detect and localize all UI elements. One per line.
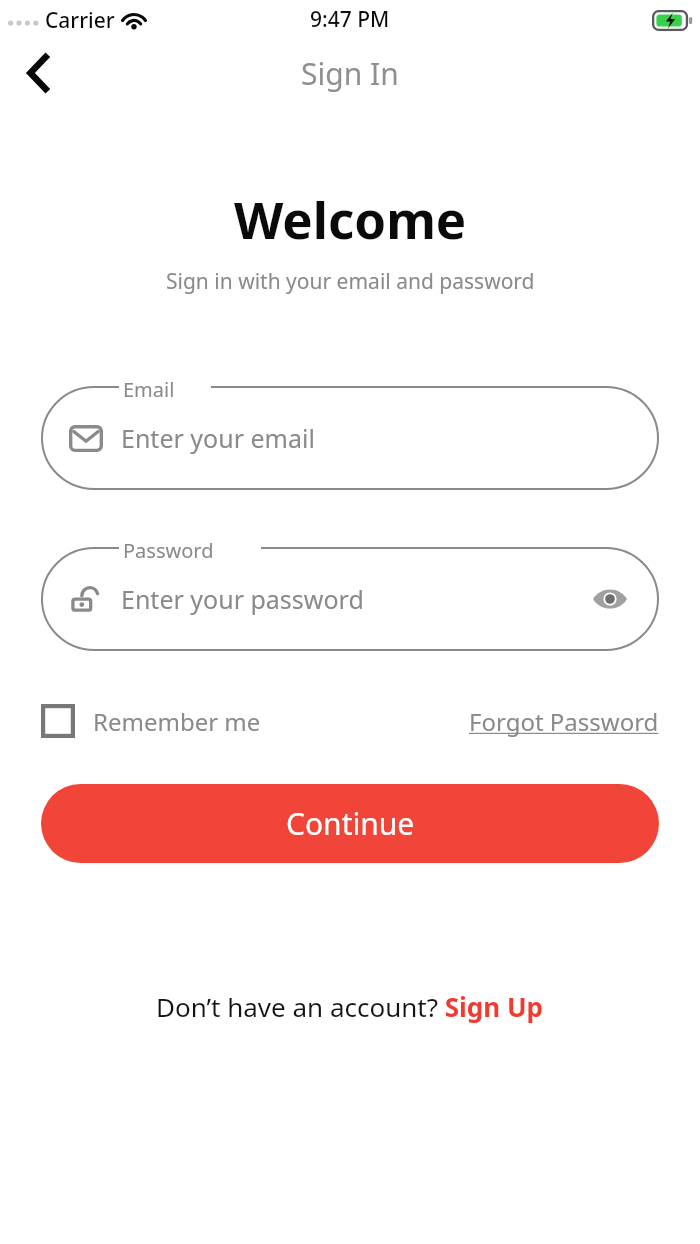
staticText: 9:47 PM: [310, 5, 390, 34]
button[interactable]: Remember me: [41, 704, 261, 738]
staticText: Sign in with your email and password: [166, 267, 535, 296]
button[interactable]: Password: [41, 537, 659, 651]
staticText: Password: [123, 537, 214, 564]
staticText: Enter your password: [121, 582, 364, 616]
staticText: Don’t have an account? Sign Up: [156, 989, 544, 1024]
staticText: Remember me: [93, 705, 261, 738]
staticText: Email: [123, 376, 175, 403]
button[interactable]: Show password: [587, 576, 633, 622]
staticText: Enter your email: [121, 421, 315, 455]
button[interactable]: Email: [41, 376, 659, 490]
button[interactable]: Continue: [41, 784, 659, 863]
staticText: Welcome: [234, 184, 467, 253]
staticText: Forgot Password: [469, 705, 659, 738]
button[interactable]: Don’t have an account? Sign Up: [156, 989, 544, 1024]
button[interactable]: Forgot Password: [469, 705, 659, 738]
staticText: Continue: [286, 803, 415, 844]
button[interactable]: Back: [12, 47, 64, 99]
staticText: Sign In: [301, 53, 399, 94]
staticText: Carrier: [45, 6, 115, 35]
